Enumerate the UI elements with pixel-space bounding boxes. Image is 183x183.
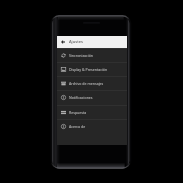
button[interactable]: Archivo de mensajes	[57, 76, 127, 90]
button[interactable]: Sincronización	[57, 48, 127, 62]
button[interactable]: Notificaciones	[57, 90, 127, 104]
staticText: Notificaciones	[69, 95, 93, 100]
staticText: Sincronización	[69, 53, 94, 58]
button[interactable]: Back	[58, 36, 67, 48]
button[interactable]: Back	[57, 36, 127, 48]
button[interactable]: Display & Presentación	[57, 62, 127, 76]
staticText: Respuesta	[69, 110, 87, 115]
staticText: Archivo de mensajes	[69, 81, 104, 86]
button[interactable]: Acerca de	[57, 119, 127, 133]
button[interactable]: Respuesta	[57, 105, 127, 119]
staticText: Display & Presentación	[69, 67, 108, 72]
staticText: Ajustes	[69, 39, 83, 44]
staticText: Acerca de	[69, 124, 86, 129]
